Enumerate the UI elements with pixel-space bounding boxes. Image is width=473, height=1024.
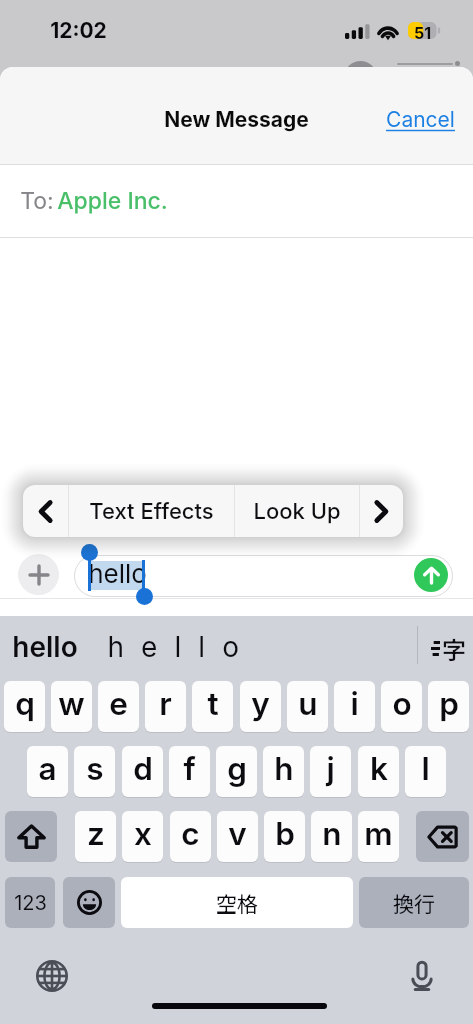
- staticText: 51: [408, 23, 437, 42]
- button[interactable]: c: [170, 811, 211, 862]
- staticText: f: [183, 749, 196, 787]
- button[interactable]: Cancel: [384, 99, 457, 140]
- staticText: a: [38, 749, 57, 787]
- staticText: c: [181, 814, 200, 852]
- staticText: hello: [12, 630, 78, 664]
- staticText: hello: [88, 558, 147, 589]
- staticText: 12:02: [50, 18, 107, 43]
- staticText: 換行: [393, 888, 435, 918]
- staticText: d: [133, 749, 153, 787]
- staticText: Look Up: [253, 498, 341, 525]
- button[interactable]: b: [264, 811, 305, 862]
- staticText: t: [207, 684, 219, 722]
- button[interactable]: y: [240, 681, 281, 732]
- staticText: m: [364, 814, 393, 852]
- button[interactable]: z: [75, 811, 116, 862]
- staticText: h: [274, 749, 294, 787]
- button[interactable]: r: [145, 681, 186, 732]
- button[interactable]: m: [358, 811, 399, 862]
- staticText: 123: [14, 891, 47, 915]
- button[interactable]: u: [287, 681, 328, 732]
- button[interactable]: To:: [0, 165, 473, 238]
- button[interactable]: s: [74, 746, 115, 797]
- button[interactable]: q: [4, 681, 45, 732]
- button[interactable]: k: [358, 746, 399, 797]
- staticText: Cancel: [386, 107, 455, 132]
- button[interactable]: 123: [5, 877, 55, 928]
- staticText: s: [86, 749, 104, 787]
- staticText: x: [134, 814, 152, 852]
- staticText: y: [251, 684, 270, 722]
- staticText: 空格: [216, 888, 258, 918]
- staticText: z: [87, 814, 105, 852]
- staticText: g: [227, 749, 247, 787]
- button[interactable]: l: [405, 746, 446, 797]
- button[interactable]: Send: [414, 558, 448, 592]
- button[interactable]: i: [334, 681, 375, 732]
- button[interactable]: Text Effects: [69, 485, 234, 537]
- button[interactable]: w: [51, 681, 92, 732]
- staticText: e: [109, 684, 128, 722]
- staticText: p: [439, 684, 459, 722]
- button[interactable]: Next: [360, 485, 403, 537]
- button[interactable]: 換行: [359, 877, 469, 928]
- button[interactable]: t: [192, 681, 233, 732]
- button[interactable]: v: [217, 811, 258, 862]
- button[interactable]: [74, 555, 453, 597]
- button[interactable]: 空格: [121, 877, 353, 928]
- staticText: Text Effects: [89, 498, 214, 525]
- staticText: 字: [442, 631, 466, 666]
- button[interactable]: x: [122, 811, 163, 862]
- button[interactable]: g: [216, 746, 257, 797]
- button[interactable]: Change keyboard: [30, 954, 73, 997]
- button[interactable]: f: [169, 746, 210, 797]
- button[interactable]: Look Up: [235, 485, 359, 537]
- staticText: To:: [17, 187, 57, 215]
- button[interactable]: o: [381, 681, 422, 732]
- button[interactable]: d: [122, 746, 163, 797]
- button[interactable]: Emoji: [63, 877, 115, 928]
- button[interactable]: a: [27, 746, 68, 797]
- staticText: l: [421, 749, 430, 787]
- button[interactable]: e: [98, 681, 139, 732]
- button[interactable]: p: [428, 681, 469, 732]
- staticText: h e l l o: [107, 630, 244, 664]
- staticText: o: [392, 684, 412, 722]
- button[interactable]: n: [311, 811, 352, 862]
- button[interactable]: Dictation: [400, 954, 443, 997]
- staticText: Apple Inc.: [57, 187, 168, 215]
- button[interactable]: Backspace: [416, 811, 469, 862]
- staticText: b: [275, 814, 295, 852]
- button[interactable]: Shift: [5, 811, 57, 862]
- staticText: k: [370, 749, 388, 787]
- staticText: i: [350, 684, 359, 722]
- staticText: w: [58, 684, 85, 722]
- button[interactable]: Add attachment: [18, 554, 59, 595]
- staticText: q: [15, 684, 35, 722]
- staticText: n: [322, 814, 342, 852]
- staticText: v: [228, 814, 247, 852]
- staticText: r: [159, 684, 172, 722]
- staticText: New Message: [164, 107, 309, 132]
- staticText: j: [326, 749, 335, 787]
- button[interactable]: Previous: [23, 485, 68, 537]
- button[interactable]: h: [263, 746, 304, 797]
- staticText: u: [298, 684, 318, 722]
- button[interactable]: j: [310, 746, 351, 797]
